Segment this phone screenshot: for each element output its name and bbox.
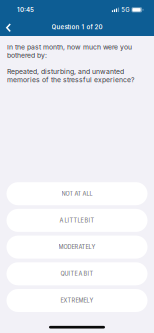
staticText: Question 1 of 20	[51, 23, 102, 31]
staticText: 10:45	[17, 6, 34, 13]
staticText: Repeated, disturbing, and unwanted memor…	[7, 67, 134, 84]
staticText: QUITE A BIT	[60, 270, 93, 277]
staticText: A LITTLE BIT	[59, 217, 94, 224]
staticText: 5G	[121, 6, 129, 13]
staticText: In the past month, how much were you bot…	[7, 43, 132, 59]
button[interactable]: NOT AT ALL	[6, 182, 147, 205]
button[interactable]: QUITE A BIT	[6, 262, 147, 285]
button[interactable]: EXTREMELY	[6, 289, 147, 312]
staticText: NOT AT ALL	[61, 190, 92, 197]
staticText: MODERATELY	[58, 244, 95, 250]
staticText: EXTREMELY	[60, 297, 93, 304]
button[interactable]: MODERATELY	[6, 236, 147, 259]
button[interactable]: A LITTLE BIT	[6, 209, 147, 232]
button[interactable]: Back	[1, 19, 16, 36]
